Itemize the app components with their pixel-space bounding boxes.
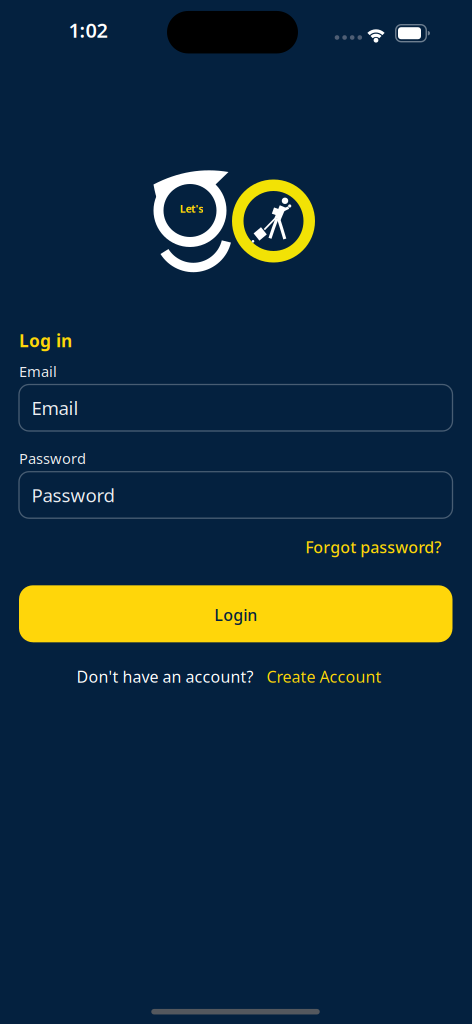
staticText: Login: [214, 604, 257, 625]
staticText: Email: [31, 395, 78, 420]
staticText: Log in: [19, 329, 72, 352]
button[interactable]: Email: [19, 384, 452, 431]
button[interactable]: Password: [19, 472, 452, 518]
button[interactable]: Login: [19, 585, 452, 642]
staticText: 1:02: [68, 17, 107, 43]
staticText: Create Account: [266, 666, 381, 687]
staticText: Email: [19, 361, 57, 381]
button[interactable]: Forgot password?: [305, 536, 441, 558]
button[interactable]: Create Account: [266, 666, 381, 687]
staticText: Password: [19, 448, 86, 468]
staticText: Let's: [180, 201, 203, 216]
staticText: Don't have an account?: [76, 666, 253, 687]
staticText: Password: [31, 483, 114, 507]
staticText: Forgot password?: [305, 536, 441, 558]
